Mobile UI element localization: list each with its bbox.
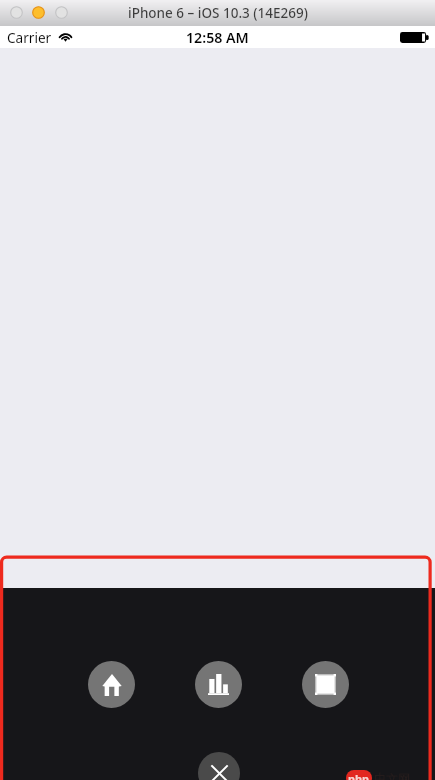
staticText: 中文网 (374, 771, 410, 780)
button[interactable] (10, 6, 23, 19)
staticText: iPhone 6 – iOS 10.3 (14E269) (128, 4, 308, 22)
staticText: php (348, 771, 370, 780)
button[interactable] (32, 6, 45, 19)
button[interactable]: Close (198, 752, 240, 780)
button[interactable]: Home (88, 661, 135, 708)
button[interactable]: Frame (302, 661, 349, 708)
button[interactable]: Statistics (195, 661, 242, 708)
staticText: 12:58 AM (186, 28, 249, 47)
staticText: Carrier (7, 28, 52, 47)
button[interactable] (55, 6, 68, 19)
